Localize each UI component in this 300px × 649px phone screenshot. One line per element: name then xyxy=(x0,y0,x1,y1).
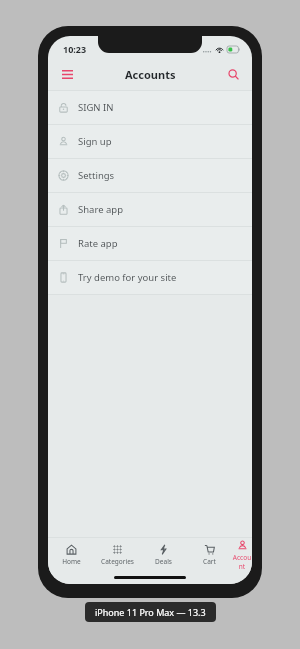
staticText: Try demo for your site xyxy=(78,271,177,284)
staticText: SIGN IN xyxy=(78,101,114,114)
button[interactable]: Home xyxy=(48,538,94,572)
button[interactable]: Account xyxy=(232,538,252,572)
button[interactable]: Sign up xyxy=(48,125,252,158)
staticText: iPhone 11 Pro Max — 13.3 xyxy=(95,606,206,618)
staticText: Account xyxy=(232,553,252,571)
button[interactable]: Settings xyxy=(48,159,252,192)
button[interactable]: Cart xyxy=(186,538,232,572)
staticText: Categories xyxy=(101,557,134,566)
staticText: Cart xyxy=(203,557,216,566)
button[interactable]: Menu xyxy=(56,63,78,85)
staticText: Accounts xyxy=(125,67,176,82)
button[interactable]: Try demo for your site xyxy=(48,261,252,294)
staticText: Share app xyxy=(78,203,123,216)
button[interactable]: SIGN IN xyxy=(48,91,252,124)
staticText: 10:23 xyxy=(63,43,87,55)
staticText: Home xyxy=(62,557,81,566)
button[interactable]: Search xyxy=(222,63,244,85)
button[interactable]: Categories xyxy=(94,538,140,572)
staticText: Rate app xyxy=(78,237,118,250)
staticText: Settings xyxy=(78,169,115,182)
button[interactable]: Deals xyxy=(140,538,186,572)
staticText: Deals xyxy=(155,557,172,566)
button[interactable]: Share app xyxy=(48,193,252,226)
button[interactable]: Rate app xyxy=(48,227,252,260)
staticText: Sign up xyxy=(78,135,112,148)
